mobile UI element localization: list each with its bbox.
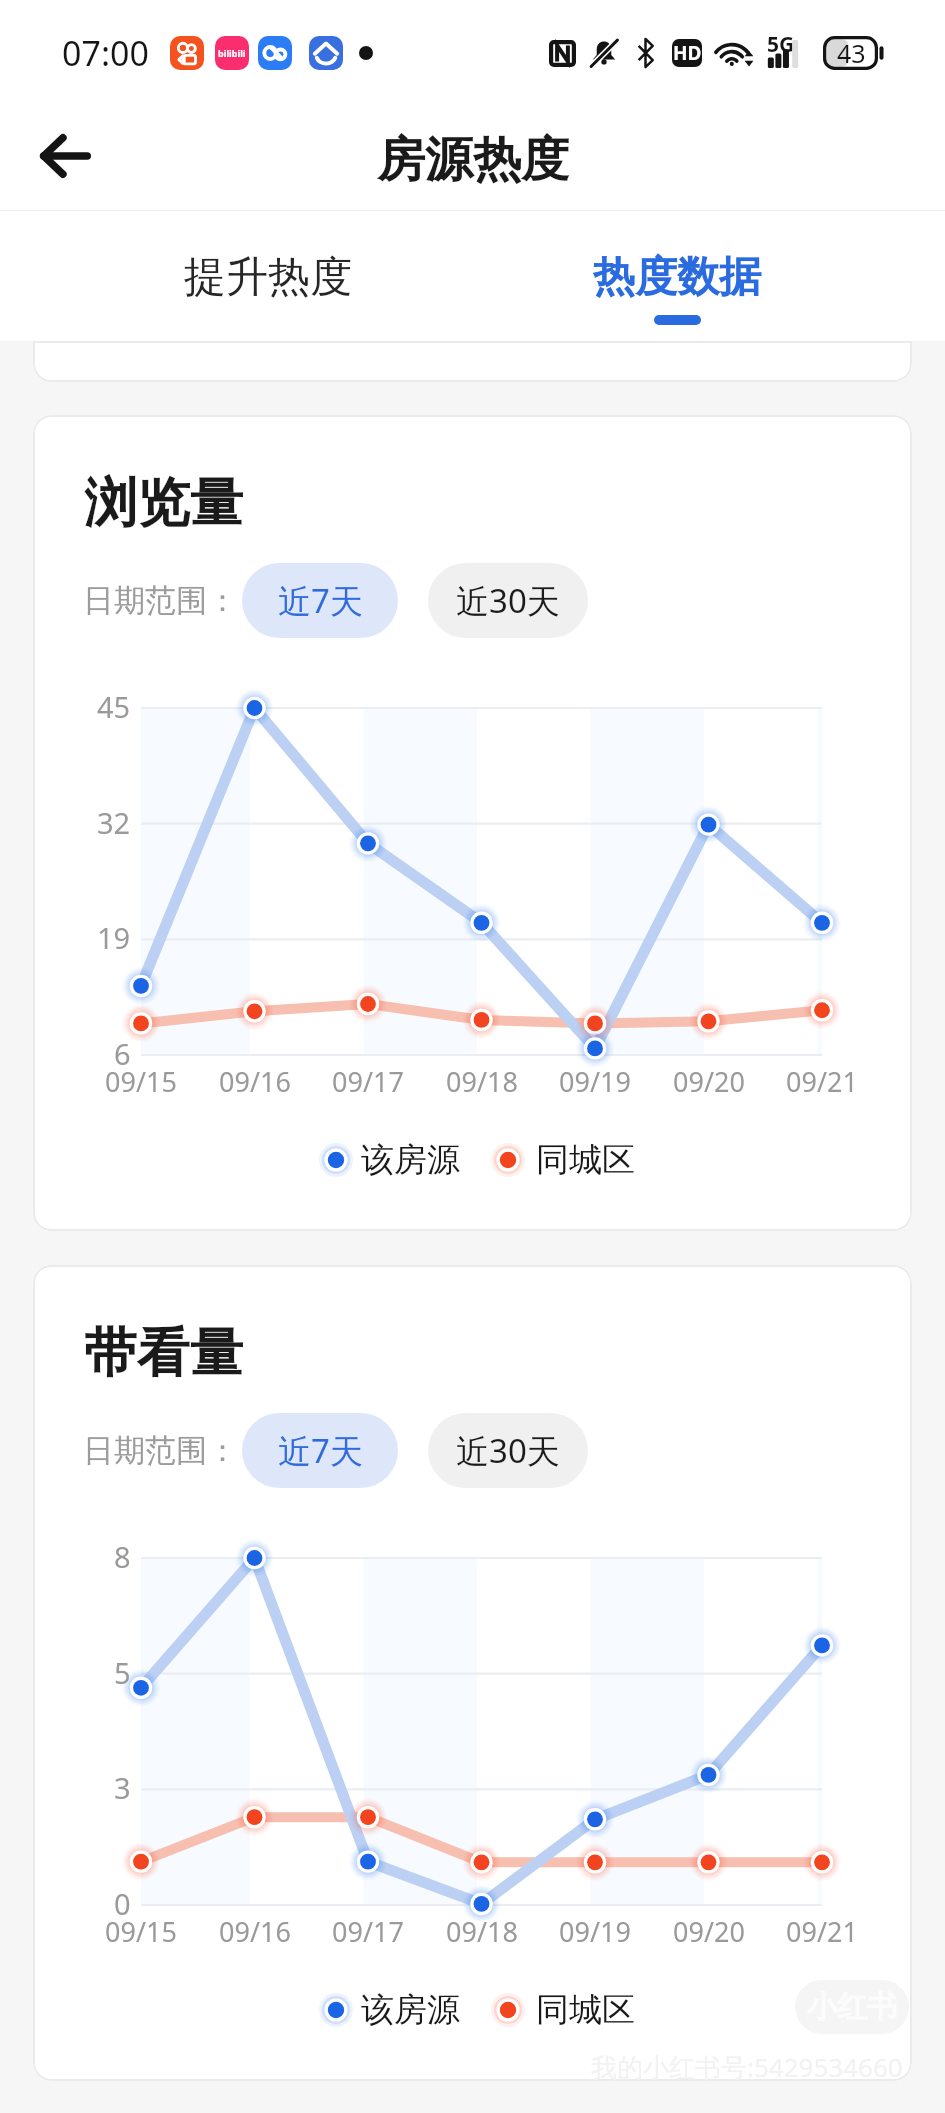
staticText: 09/20 bbox=[673, 1063, 745, 1100]
staticText: 32 bbox=[97, 803, 131, 842]
staticText: 同城区 bbox=[536, 1989, 635, 2031]
staticText: 6 bbox=[114, 1034, 131, 1073]
staticText: 我的小红书号:5429534660 bbox=[591, 2049, 903, 2085]
staticText: 45 bbox=[97, 687, 131, 726]
staticText: 带看量 bbox=[84, 1320, 243, 1387]
staticText: 该房源 bbox=[361, 1139, 460, 1181]
staticText: 近7天 bbox=[278, 578, 363, 623]
button[interactable]: 近7天 bbox=[242, 1413, 398, 1488]
staticText: 09/18 bbox=[446, 1063, 518, 1100]
staticText: 热度数据 bbox=[593, 251, 761, 304]
staticText: 8 bbox=[114, 1537, 131, 1576]
staticText: 该房源 bbox=[361, 1989, 460, 2031]
staticText: 3 bbox=[114, 1768, 131, 1807]
staticText: 09/17 bbox=[332, 1063, 404, 1100]
staticText: bilibili bbox=[218, 47, 246, 59]
staticText: 19 bbox=[97, 918, 131, 957]
staticText: 近30天 bbox=[456, 578, 560, 623]
staticText: 09/18 bbox=[446, 1913, 518, 1950]
staticText: 近7天 bbox=[278, 1428, 363, 1473]
staticText: 09/21 bbox=[786, 1913, 858, 1950]
staticText: 近30天 bbox=[456, 1428, 560, 1473]
staticText: 09/16 bbox=[219, 1063, 291, 1100]
staticText: 提升热度 bbox=[184, 251, 352, 304]
staticText: 09/19 bbox=[559, 1913, 631, 1950]
staticText: 0 bbox=[114, 1884, 131, 1923]
staticText: 5G bbox=[767, 30, 795, 59]
staticText: 43 bbox=[837, 36, 866, 70]
staticText: 5 bbox=[114, 1653, 131, 1692]
staticText: 09/21 bbox=[786, 1063, 858, 1100]
staticText: 09/19 bbox=[559, 1063, 631, 1100]
staticText: 09/20 bbox=[673, 1913, 745, 1950]
staticText: 09/15 bbox=[105, 1063, 177, 1100]
staticText: 09/16 bbox=[219, 1913, 291, 1950]
staticText: HD bbox=[673, 40, 702, 66]
staticText: 日期范围： bbox=[83, 1431, 238, 1470]
button[interactable]: 热度数据 bbox=[472, 211, 881, 341]
staticText: 同城区 bbox=[536, 1139, 635, 1181]
button[interactable]: 提升热度 bbox=[64, 211, 472, 341]
staticText: 09/17 bbox=[332, 1913, 404, 1950]
staticText: 浏览量 bbox=[84, 470, 243, 537]
staticText: 07:00 bbox=[62, 30, 149, 76]
staticText: 09/15 bbox=[105, 1913, 177, 1950]
staticText: 日期范围： bbox=[83, 581, 238, 620]
button[interactable]: 近7天 bbox=[242, 563, 398, 638]
staticText: 房源热度 bbox=[377, 130, 569, 190]
button[interactable]: 近30天 bbox=[428, 1413, 588, 1488]
button[interactable]: Back bbox=[18, 109, 112, 203]
button[interactable]: 近30天 bbox=[428, 563, 588, 638]
